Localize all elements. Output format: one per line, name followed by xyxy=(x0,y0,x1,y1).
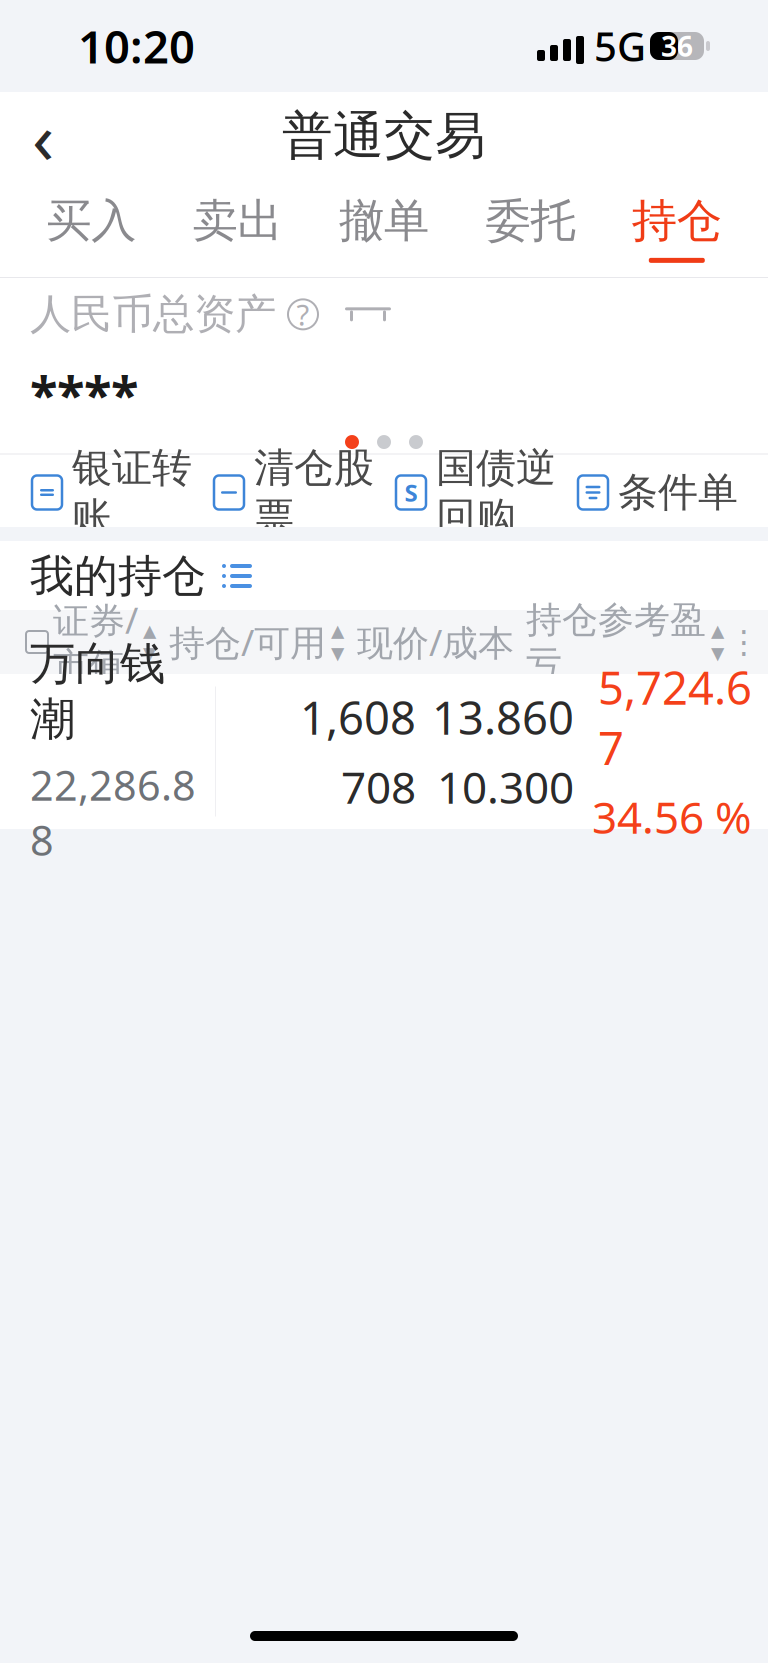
staticText: 证券/市值 xyxy=(53,596,138,688)
button[interactable]: 说明 xyxy=(288,299,318,329)
staticText: 36 xyxy=(661,27,693,65)
staticText: ▼ xyxy=(711,643,724,663)
button[interactable]: 卖出 xyxy=(164,184,311,272)
staticText: 持仓/可用 xyxy=(169,618,326,666)
staticText: 清仓股票 xyxy=(254,443,374,542)
button[interactable]: S xyxy=(394,462,556,522)
button[interactable]: 排序方式 xyxy=(214,553,260,599)
staticText: 撤单 xyxy=(339,193,429,249)
staticText: ▲ xyxy=(331,621,344,640)
staticText: S xyxy=(404,477,417,508)
button[interactable]: 返回 xyxy=(0,93,86,179)
staticText: 10.300 xyxy=(437,757,574,816)
staticText: **** xyxy=(30,360,138,427)
button[interactable]: 清仓股票 xyxy=(212,462,374,522)
staticText: 条件单 xyxy=(618,468,738,517)
staticText: 1,608 xyxy=(300,687,416,747)
button[interactable]: 买入 xyxy=(18,184,164,272)
staticText: 5,724.67 xyxy=(598,657,752,777)
staticText: 万向钱潮 xyxy=(30,636,165,747)
button[interactable]: 万向钱潮 xyxy=(0,674,768,829)
staticText: 13.860 xyxy=(432,687,574,747)
staticText: ▲ xyxy=(143,621,156,640)
staticText: 委托 xyxy=(485,193,575,249)
staticText: 持仓 xyxy=(632,193,722,249)
button[interactable]: 持仓 xyxy=(604,184,750,272)
staticText: 10:20 xyxy=(78,16,195,76)
button[interactable]: 条件单 xyxy=(576,462,738,522)
staticText: 人民币总资产 xyxy=(30,289,276,340)
staticText: 银证转账 xyxy=(72,443,192,542)
staticText: 持仓参考盈亏 xyxy=(526,598,706,686)
staticText: ‹ xyxy=(32,88,54,184)
staticText: ▼ xyxy=(331,643,344,663)
staticText: 我的持仓 xyxy=(30,549,206,603)
staticText: 现价/成本 xyxy=(357,618,514,666)
staticText: 708 xyxy=(341,757,416,816)
staticText: ? xyxy=(296,295,309,334)
button[interactable]: 银证转账 xyxy=(30,462,192,522)
staticText: 22,286.88 xyxy=(30,757,196,867)
button[interactable]: 委托 xyxy=(457,184,604,272)
staticText: 国债逆回购 xyxy=(436,443,556,542)
button[interactable]: 显示金额 xyxy=(340,294,396,334)
staticText: 卖出 xyxy=(193,193,283,249)
staticText: ▲ xyxy=(711,621,724,640)
staticText: 5G xyxy=(594,19,646,72)
staticText: ▼ xyxy=(143,643,156,663)
staticText: 34.56 % xyxy=(592,787,752,846)
staticText: 买入 xyxy=(46,193,136,249)
staticText: 普通交易 xyxy=(282,105,486,167)
button[interactable]: 撤单 xyxy=(311,184,457,272)
staticText: ⋮ xyxy=(728,624,760,660)
